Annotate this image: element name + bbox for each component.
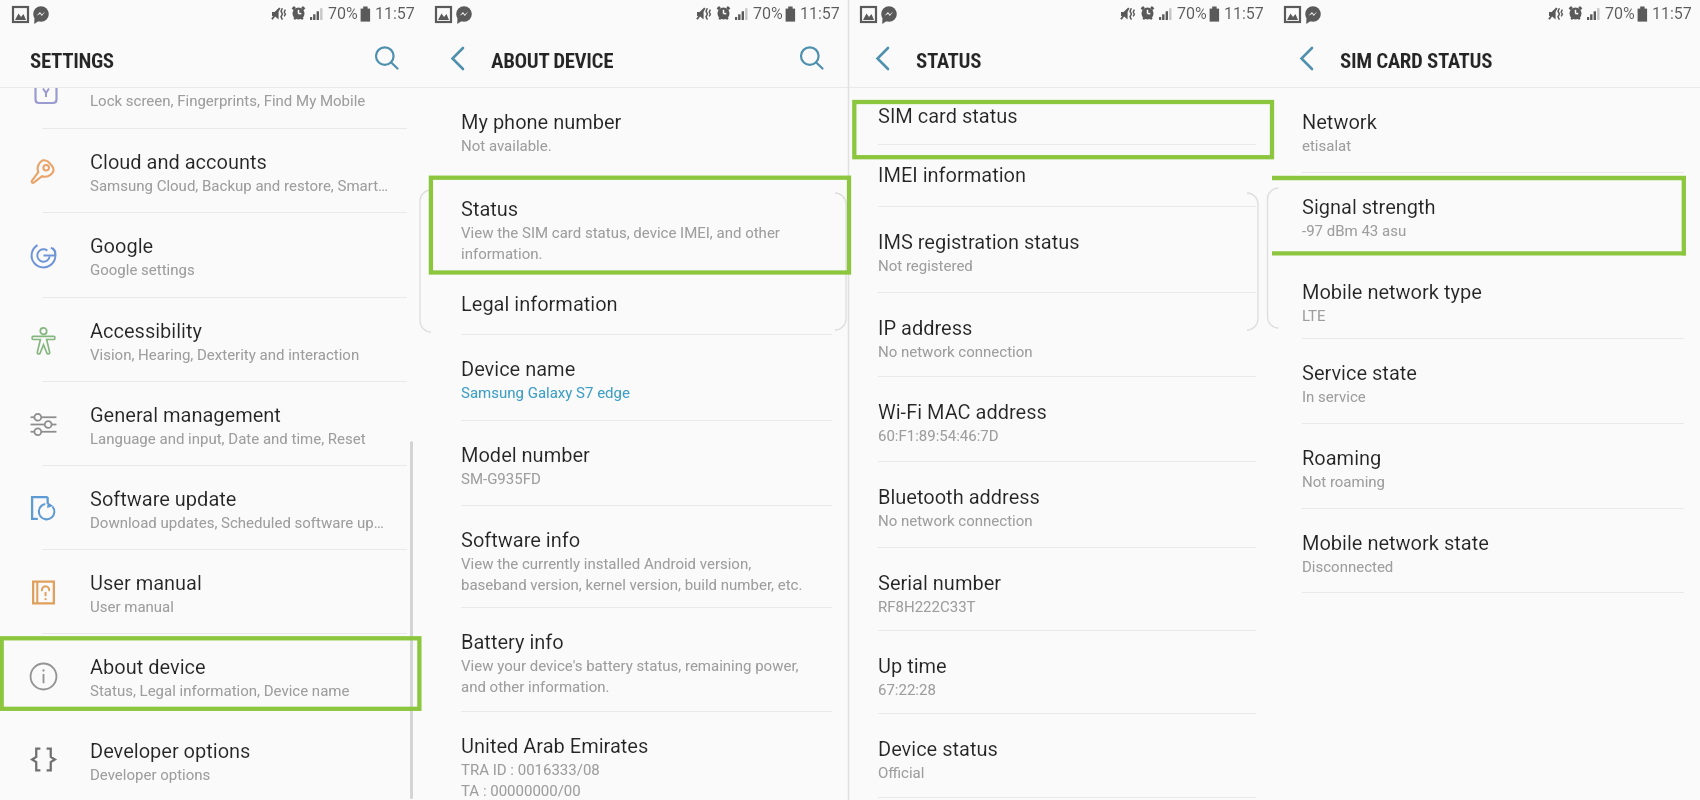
staticText: Serial number — [878, 571, 1002, 594]
button[interactable]: Back — [863, 39, 903, 79]
button[interactable]: Software update — [0, 466, 423, 550]
staticText: Software info — [461, 528, 581, 551]
button[interactable]: Back — [1287, 39, 1327, 79]
staticText: 11:57 — [1224, 4, 1264, 23]
staticText: SM-G935FD — [461, 470, 541, 488]
button[interactable]: Accessibility — [0, 298, 423, 382]
button[interactable]: United Arab Emirates — [423, 712, 848, 800]
staticText: Not registered — [878, 257, 973, 275]
staticText: Wi-Fi MAC address — [878, 400, 1047, 423]
button[interactable]: Bluetooth address — [848, 462, 1272, 548]
button[interactable]: Wi-Fi MAC address — [848, 377, 1272, 462]
button[interactable]: Signal strength — [1272, 173, 1700, 258]
staticText: Status, Legal information, Device name — [90, 682, 350, 700]
staticText: Samsung Cloud, Backup and restore, Smart… — [90, 177, 389, 195]
button[interactable]: Model number — [423, 421, 848, 506]
button[interactable]: Device name — [423, 335, 848, 421]
staticText: 11:57 — [800, 4, 840, 23]
button[interactable]: Serial number — [848, 548, 1272, 631]
staticText: Device status — [878, 737, 998, 760]
staticText: User manual — [90, 571, 202, 594]
button[interactable]: SIM card status — [848, 88, 1272, 145]
staticText: SIM card status — [878, 104, 1018, 127]
button[interactable]: Network — [1272, 88, 1700, 173]
button[interactable]: Mobile network type — [1272, 258, 1700, 339]
button[interactable]: General management — [0, 382, 423, 466]
staticText: In service — [1302, 388, 1366, 406]
button[interactable]: My phone number — [423, 88, 848, 178]
staticText: Legal information — [461, 292, 618, 315]
staticText: SETTINGS — [30, 49, 114, 74]
staticText: Vision, Hearing, Dexterity and interacti… — [90, 346, 360, 364]
staticText: 70% — [1605, 4, 1635, 23]
staticText: View the SIM card status, device IMEI, a… — [461, 224, 780, 263]
staticText: No network connection — [878, 512, 1033, 530]
staticText: LTE — [1302, 307, 1326, 325]
button[interactable]: Up time — [848, 631, 1272, 714]
staticText: Download updates, Scheduled software up… — [90, 514, 384, 532]
button[interactable]: Device status — [848, 714, 1272, 798]
staticText: Device name — [461, 357, 576, 380]
staticText: Lock screen, Fingerprints, Find My Mobil… — [90, 92, 366, 110]
button[interactable]: Search — [791, 37, 835, 81]
staticText: My phone number — [461, 110, 622, 133]
staticText: About device — [90, 655, 206, 678]
staticText: Developer options — [90, 766, 211, 784]
staticText: Roaming — [1302, 446, 1382, 469]
staticText: Language and input, Date and time, Reset — [90, 430, 366, 448]
staticText: 60:F1:89:54:46:7D — [878, 427, 999, 445]
button[interactable]: Service state — [1272, 339, 1700, 424]
staticText: Bluetooth address — [878, 485, 1040, 508]
button[interactable]: IMS registration status — [848, 207, 1272, 293]
button[interactable]: Search — [366, 37, 410, 81]
staticText: General management — [90, 403, 281, 426]
staticText: Service state — [1302, 361, 1417, 384]
staticText: Status — [461, 197, 519, 220]
staticText: View your device's battery status, remai… — [461, 657, 799, 696]
button[interactable]: Legal information — [423, 274, 848, 335]
staticText: IP address — [878, 316, 973, 339]
staticText: Samsung Galaxy S7 edge — [461, 384, 630, 402]
staticText: No network connection — [878, 343, 1033, 361]
staticText: -97 dBm 43 asu — [1302, 222, 1407, 240]
staticText: Not available. — [461, 137, 552, 155]
staticText: Disconnected — [1302, 558, 1394, 576]
button[interactable]: Google — [0, 213, 423, 298]
button[interactable]: Roaming — [1272, 424, 1700, 509]
button[interactable]: Mobile network state — [1272, 509, 1700, 593]
staticText: Not roaming — [1302, 473, 1386, 491]
staticText: 70% — [1177, 4, 1207, 23]
staticText: IMS registration status — [878, 230, 1080, 253]
staticText: Mobile network type — [1302, 280, 1482, 303]
staticText: STATUS — [916, 49, 982, 74]
staticText: IMEI information — [878, 163, 1026, 186]
button[interactable]: About device — [0, 634, 423, 718]
staticText: User manual — [90, 598, 174, 616]
staticText: Cloud and accounts — [90, 150, 267, 173]
staticText: TRA ID : 0016333/08 TA : 00000000/00 — [461, 761, 600, 800]
staticText: 11:57 — [375, 4, 415, 23]
staticText: Google — [90, 234, 154, 257]
staticText: Official — [878, 764, 925, 782]
button[interactable]: Cloud and accounts — [0, 129, 423, 213]
staticText: 11:57 — [1652, 4, 1692, 23]
staticText: 70% — [328, 4, 358, 23]
button[interactable]: User manual — [0, 550, 423, 634]
staticText: 67:22:28 — [878, 681, 936, 699]
staticText: Mobile network state — [1302, 531, 1489, 554]
button[interactable]: Software info — [423, 506, 848, 608]
staticText: Accessibility — [90, 319, 202, 342]
staticText: SIM CARD STATUS — [1340, 49, 1493, 74]
button[interactable]: Battery info — [423, 608, 848, 712]
button[interactable]: IP address — [848, 293, 1272, 377]
staticText: Network — [1302, 110, 1377, 133]
button[interactable]: Developer options — [0, 718, 423, 800]
button[interactable]: Back — [438, 39, 478, 79]
staticText: RF8H222C33T — [878, 598, 976, 616]
button[interactable]: Status — [423, 178, 848, 274]
staticText: Model number — [461, 443, 590, 466]
staticText: 70% — [753, 4, 783, 23]
staticText: View the currently installed Android ver… — [461, 555, 803, 594]
button[interactable]: IMEI information — [848, 145, 1272, 207]
staticText: etisalat — [1302, 137, 1352, 155]
